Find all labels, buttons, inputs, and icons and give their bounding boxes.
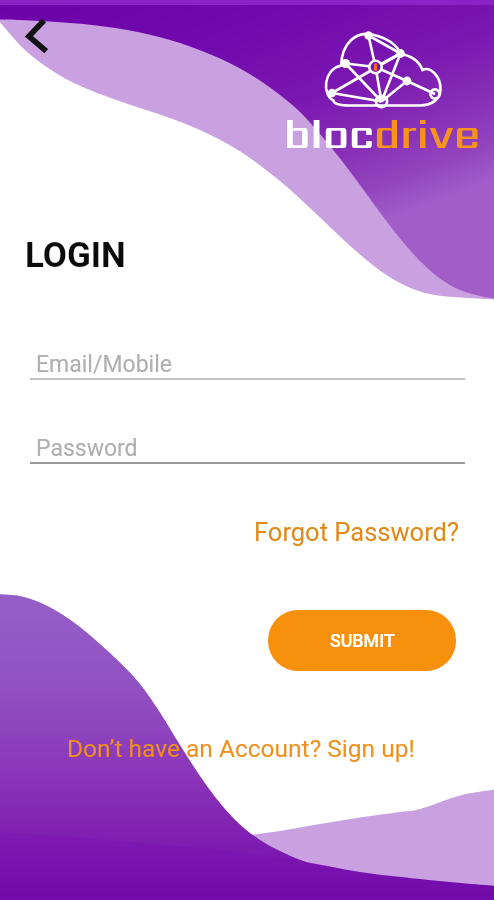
button[interactable]: SUBMIT (268, 610, 456, 671)
button[interactable]: Back (13, 8, 61, 56)
button[interactable]: Forgot Password? (248, 512, 465, 552)
staticText: LOGIN (25, 235, 126, 276)
staticText: Don’t have an Account? Sign up! (67, 734, 415, 763)
button[interactable]: Don’t have an Account? Sign up! (61, 729, 421, 768)
staticText: Email/Mobile (36, 351, 172, 378)
staticText: bloc (284, 105, 374, 162)
staticText: SUBMIT (330, 630, 395, 651)
staticText: Password (36, 435, 138, 462)
staticText: drive (374, 105, 481, 162)
staticText: Forgot Password? (254, 517, 459, 547)
